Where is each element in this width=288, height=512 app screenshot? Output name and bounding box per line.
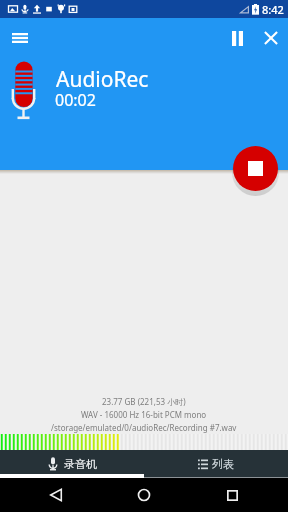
button[interactable]: 列表 <box>144 450 288 478</box>
staticText: 00:02 <box>55 89 96 111</box>
button[interactable]: Back <box>42 481 70 509</box>
button[interactable]: Home <box>130 481 158 509</box>
button[interactable]: Pause <box>220 18 254 58</box>
staticText: 录音机 <box>64 457 97 471</box>
button[interactable]: 录音机 <box>0 450 144 478</box>
button[interactable]: Close <box>254 18 288 58</box>
button[interactable]: Recents <box>218 481 246 509</box>
button[interactable]: Menu <box>0 18 40 58</box>
staticText: 23.77 GB (221,53 小时) <box>102 396 186 407</box>
staticText: /storage/emulated/0/audioRec/Recording #… <box>51 422 237 433</box>
staticText: WAV - 16000 Hz 16-bit PCM mono <box>81 409 207 420</box>
staticText: AudioRec <box>56 65 149 94</box>
button[interactable]: Stop recording <box>233 146 278 191</box>
staticText: 8:42 <box>262 2 284 17</box>
staticText: 列表 <box>212 457 234 471</box>
